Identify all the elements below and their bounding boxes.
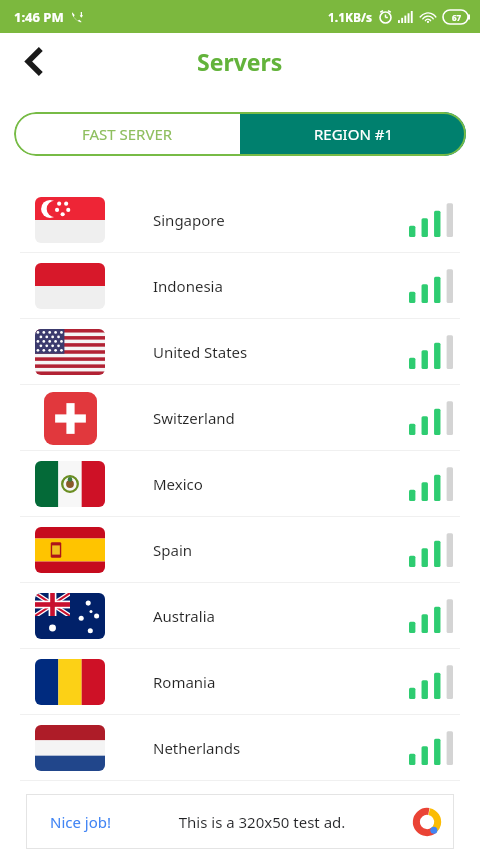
button[interactable]: Back — [14, 41, 54, 81]
button[interactable]: REGION #1 — [240, 112, 466, 156]
button[interactable]: Singapore — [0, 187, 480, 253]
button[interactable]: Romania — [0, 649, 480, 715]
staticText: FAST SERVER — [82, 124, 173, 144]
staticText: Singapore — [153, 210, 409, 230]
staticText: 1.1KB/s — [328, 9, 373, 25]
staticText: Australia — [153, 606, 409, 626]
button[interactable]: Australia — [0, 583, 480, 649]
staticText: Spain — [153, 540, 409, 560]
staticText: REGION #1 — [314, 124, 393, 144]
button[interactable]: Spain — [0, 517, 480, 583]
staticText: United States — [153, 342, 409, 362]
staticText: Servers — [197, 46, 283, 77]
button[interactable]: FAST SERVER — [14, 112, 240, 156]
staticText: Romania — [153, 672, 409, 692]
button[interactable]: Netherlands — [0, 715, 480, 781]
button[interactable]: Mexico — [0, 451, 480, 517]
staticText: Switzerland — [153, 408, 409, 428]
staticText: 67 — [452, 12, 462, 23]
staticText: This is a 320x50 test ad. — [112, 812, 412, 832]
button[interactable]: United States — [0, 319, 480, 385]
button[interactable]: Switzerland — [0, 385, 480, 451]
button[interactable]: Indonesia — [0, 253, 480, 319]
staticText: Indonesia — [153, 276, 409, 296]
staticText: Mexico — [153, 474, 409, 494]
staticText: 1:46 PM — [14, 8, 64, 26]
staticText: Netherlands — [153, 738, 409, 758]
staticText: Nice job! — [50, 812, 112, 832]
button[interactable]: Nice job! — [26, 794, 454, 849]
